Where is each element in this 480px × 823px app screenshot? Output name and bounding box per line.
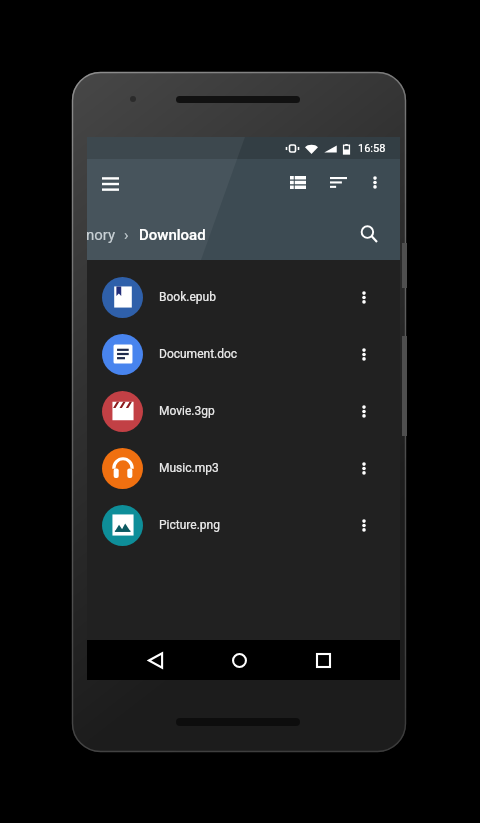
button[interactable]: Picture.png: [87, 497, 400, 554]
staticText: Download: [139, 226, 206, 244]
button[interactable]: More options: [351, 342, 377, 368]
button[interactable]: More options: [351, 285, 377, 311]
button[interactable]: Menu: [90, 164, 130, 204]
staticText: Movie.3gp: [159, 404, 215, 418]
staticText: Document.doc: [159, 347, 238, 361]
button[interactable]: Movie.3gp: [87, 383, 400, 440]
staticText: nory: [86, 226, 116, 244]
staticText: Book.epub: [159, 290, 216, 304]
button[interactable]: More options: [351, 456, 377, 482]
button[interactable]: More options: [351, 399, 377, 425]
button[interactable]: Music.mp3: [87, 440, 400, 497]
button[interactable]: Home: [219, 640, 259, 680]
staticText: ›: [124, 226, 129, 244]
button[interactable]: Sort: [322, 163, 355, 205]
button[interactable]: More options: [351, 513, 377, 539]
button[interactable]: Search: [350, 215, 388, 253]
staticText: Picture.png: [159, 518, 220, 532]
button[interactable]: View mode: [273, 163, 322, 205]
button[interactable]: More options: [355, 163, 395, 205]
staticText: 16:58: [358, 142, 386, 155]
button[interactable]: Recents: [303, 640, 343, 680]
staticText: Music.mp3: [159, 461, 219, 475]
button[interactable]: Book.epub: [87, 269, 400, 326]
button[interactable]: Document.doc: [87, 326, 400, 383]
button[interactable]: Back: [135, 640, 175, 680]
